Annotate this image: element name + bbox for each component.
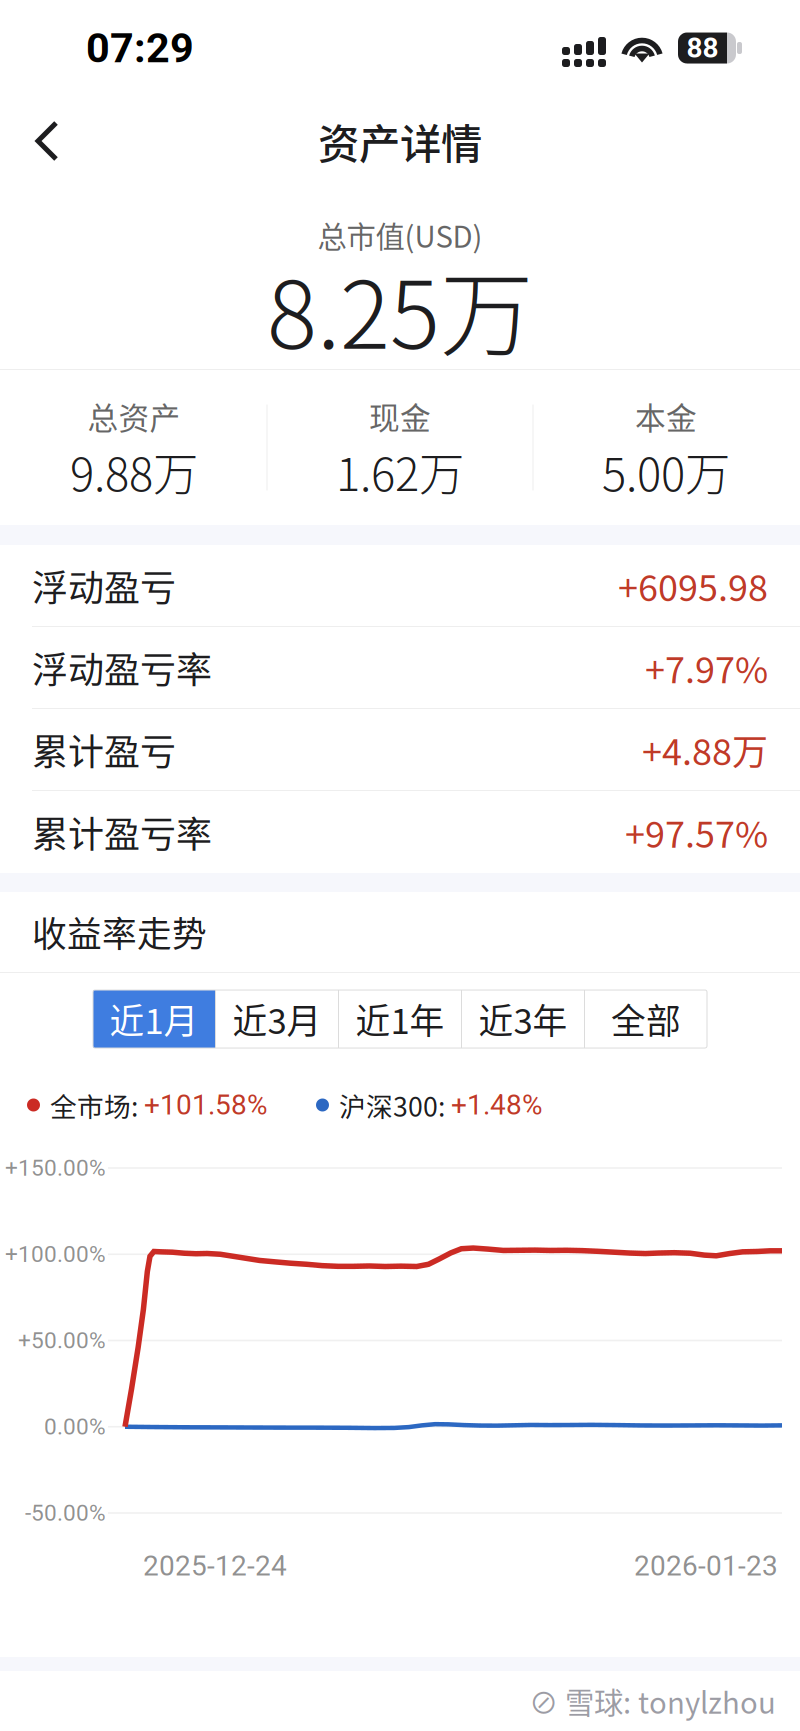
staticText: +101.58% — [144, 1089, 268, 1121]
staticText: 浮动盈亏率 — [32, 641, 212, 693]
staticText: 总资产 — [87, 394, 180, 438]
staticText: 2026-01-23 — [634, 1550, 778, 1582]
staticText: 收益率走势 — [32, 907, 207, 957]
staticText: ⊘ 雪球: tonylzhou — [529, 1680, 776, 1722]
staticText: 0.00% — [44, 1413, 106, 1440]
staticText: +150.00% — [5, 1155, 106, 1181]
staticText: +100.00% — [5, 1241, 106, 1268]
staticText: 沪深300: — [339, 1086, 445, 1124]
button[interactable]: 全部 — [585, 990, 707, 1048]
staticText: +6095.98 — [618, 559, 768, 611]
staticText: 总市值(USD) — [317, 214, 482, 256]
staticText: 1.62万 — [336, 438, 464, 504]
staticText: -50.00% — [25, 1500, 106, 1526]
staticText: 现金 — [369, 394, 431, 438]
button[interactable]: 近3月 — [216, 990, 338, 1048]
staticText: +4.88万 — [642, 723, 768, 775]
staticText: 近1年 — [355, 994, 444, 1044]
staticText: 8.25万 — [267, 240, 533, 375]
staticText: 9.88万 — [70, 438, 198, 504]
staticText: 88 — [686, 32, 718, 64]
staticText: 累计盈亏 — [32, 723, 176, 775]
staticText: 2025-12-24 — [143, 1550, 287, 1582]
button[interactable]: 近1月 — [93, 990, 215, 1048]
staticText: +7.97% — [645, 641, 768, 693]
staticText: 近3年 — [478, 994, 567, 1044]
staticText: 全市场: — [50, 1086, 138, 1124]
button[interactable]: 近3年 — [462, 990, 584, 1048]
staticText: 近1月 — [109, 994, 198, 1044]
staticText: 资产详情 — [318, 111, 482, 171]
staticText: 累计盈亏率 — [32, 806, 212, 858]
button[interactable]: 近1年 — [339, 990, 461, 1048]
staticText: +50.00% — [18, 1327, 106, 1354]
staticText: 全部 — [611, 994, 681, 1044]
staticText: +1.48% — [451, 1089, 543, 1121]
staticText: 本金 — [635, 394, 697, 438]
staticText: +97.57% — [625, 806, 768, 858]
button[interactable]: Back — [0, 99, 82, 183]
staticText: 浮动盈亏 — [32, 559, 176, 611]
staticText: 近3月 — [232, 994, 321, 1044]
staticText: 07:29 — [86, 24, 194, 72]
staticText: 5.00万 — [602, 438, 730, 504]
